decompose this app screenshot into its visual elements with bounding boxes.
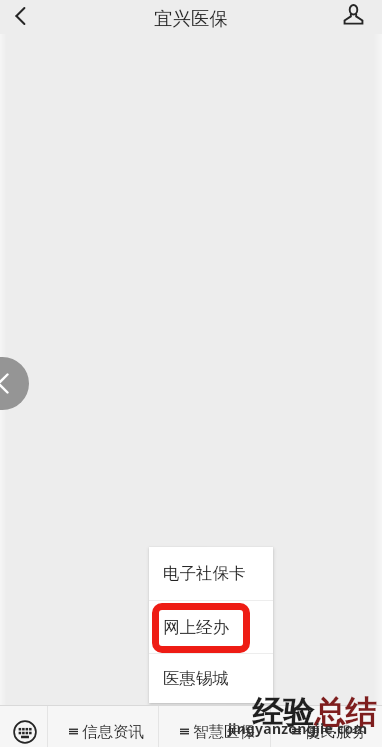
button[interactable]: Account: [339, 0, 367, 28]
staticText: 总结: [314, 693, 376, 732]
button[interactable]: 网上经办: [149, 601, 273, 653]
button[interactable]: 医惠锡城: [149, 654, 273, 703]
staticText: jingyanzongjie.com: [228, 719, 368, 738]
staticText: 信息资讯: [82, 722, 144, 742]
button[interactable]: Collapse: [0, 357, 29, 410]
staticText: 便民服务: [305, 722, 367, 742]
staticText: 经验: [252, 693, 314, 732]
staticText: 电子社保卡: [163, 563, 246, 584]
staticText: 网上经办: [163, 617, 229, 638]
staticText: 宜兴医保: [154, 7, 228, 30]
button[interactable]: 信息资讯: [48, 706, 158, 747]
button[interactable]: Back: [7, 1, 37, 31]
staticText: 智慧医保: [193, 722, 255, 742]
button[interactable]: 智慧医保: [159, 706, 270, 747]
button[interactable]: 便民服务: [271, 706, 382, 747]
button[interactable]: 电子社保卡: [149, 547, 273, 600]
staticText: 医惠锡城: [163, 668, 229, 689]
button[interactable]: Keyboard: [0, 706, 47, 747]
